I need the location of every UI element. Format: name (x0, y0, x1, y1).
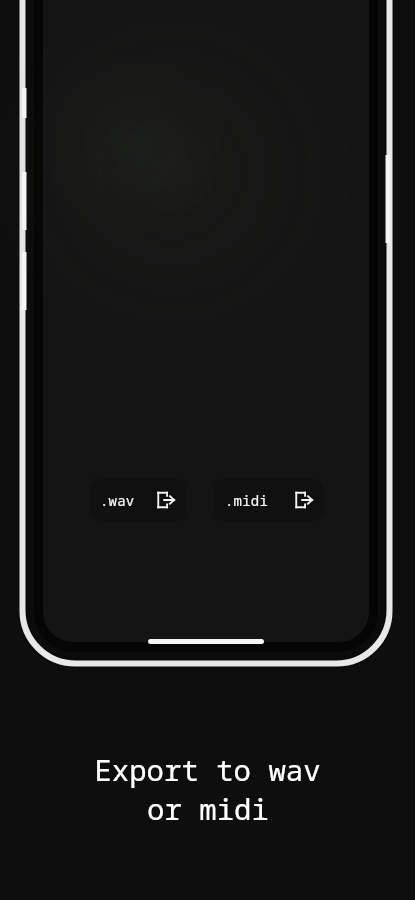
staticText: Export to wav (94, 750, 321, 789)
staticText: .midi (225, 491, 268, 510)
other: Export .wav (157, 491, 175, 509)
button[interactable]: .midi (214, 479, 324, 521)
staticText: or midi (147, 789, 269, 828)
staticText: .wav (100, 491, 135, 510)
button[interactable]: .wav (89, 479, 186, 521)
other: Export .midi (295, 491, 313, 509)
